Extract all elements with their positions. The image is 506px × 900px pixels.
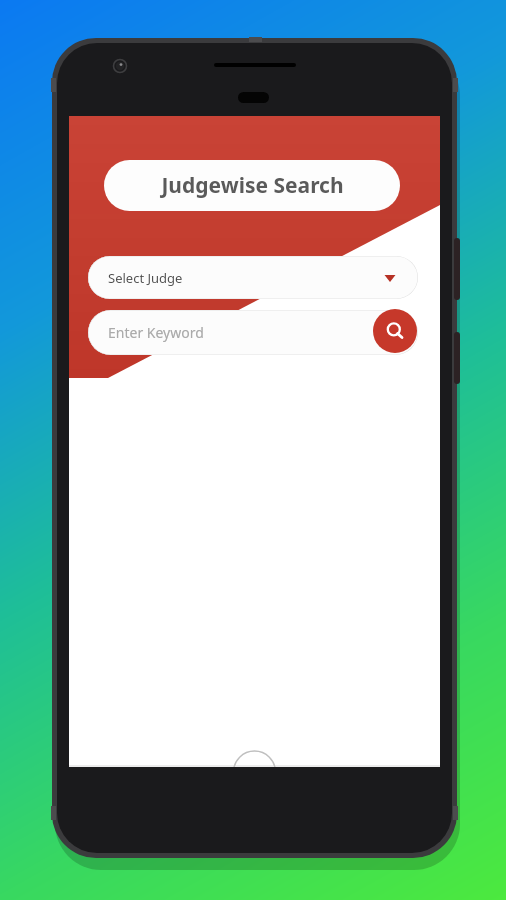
button[interactable]: Search [373, 309, 417, 353]
staticText: Enter Keyword [108, 323, 204, 342]
button[interactable]: Select Judge [88, 256, 418, 299]
button[interactable]: Enter Keyword [88, 310, 418, 355]
staticText: Select Judge [108, 269, 183, 287]
button[interactable]: Judgewise Search [104, 160, 400, 211]
staticText: Judgewise Search [161, 171, 344, 200]
